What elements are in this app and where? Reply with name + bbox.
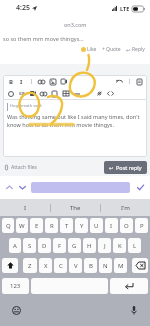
button[interactable]: Return — [110, 278, 148, 294]
button[interactable]: Backspace — [132, 258, 148, 273]
button[interactable]: N — [99, 258, 112, 273]
staticText: 123 — [10, 282, 21, 290]
button[interactable]: O — [120, 218, 133, 233]
button[interactable]: T — [60, 218, 73, 233]
button[interactable]: ↩ — [125, 45, 146, 54]
staticText: ↩ — [109, 165, 114, 171]
button[interactable]: G — [68, 238, 81, 253]
button[interactable]: Source code — [105, 88, 116, 99]
button[interactable]: Like — [80, 45, 98, 54]
button[interactable]: Next field — [16, 181, 29, 194]
staticText: X — [44, 262, 48, 270]
staticText: B — [9, 78, 13, 86]
button[interactable]: I'm — [101, 199, 150, 216]
staticText: Hogsbreath said: — [10, 103, 42, 108]
button[interactable]: Q — [2, 218, 14, 233]
staticText: so so them mm move thingys... — [3, 35, 84, 42]
staticText: I — [110, 222, 113, 230]
button[interactable]: Attach file — [49, 88, 60, 99]
staticText: ↩ — [126, 47, 131, 53]
button[interactable]: The — [51, 199, 100, 216]
button[interactable]: Preview — [134, 76, 145, 87]
staticText: LTE — [120, 5, 130, 12]
staticText: I'm — [121, 204, 130, 212]
staticText: E — [35, 222, 39, 230]
staticText: H — [87, 242, 92, 250]
button[interactable]: Insert GIF — [16, 88, 27, 99]
staticText: Quote — [106, 46, 121, 53]
button[interactable]: J — [98, 238, 111, 253]
staticText: I — [24, 204, 27, 212]
staticText: G — [72, 242, 77, 250]
staticText: Z — [28, 262, 32, 270]
button[interactable]: Dictation — [127, 303, 141, 317]
staticText: Attach files — [11, 164, 37, 171]
button[interactable]: Shift — [2, 258, 18, 273]
staticText: L — [133, 242, 137, 250]
staticText: Q — [6, 222, 11, 230]
staticText: P — [140, 222, 144, 230]
button[interactable]: Undo — [114, 76, 125, 87]
button[interactable]: + — [101, 45, 122, 54]
staticText: K — [118, 242, 122, 250]
button[interactable]: Done — [135, 182, 146, 193]
button[interactable]: Insert link 2 — [38, 88, 49, 99]
staticText: S — [28, 242, 32, 250]
button[interactable]: Italic — [16, 76, 27, 87]
button[interactable]: M — [114, 258, 127, 273]
button[interactable]: Y — [75, 218, 88, 233]
button[interactable]: 123 — [2, 278, 29, 294]
staticText: GIF — [19, 91, 25, 96]
button[interactable]: A — [9, 238, 21, 253]
staticText: F — [58, 242, 62, 250]
button[interactable]: V — [69, 258, 82, 273]
button[interactable]: L — [128, 238, 141, 253]
button[interactable]: ↩ — [104, 161, 147, 174]
staticText: + — [102, 46, 105, 53]
staticText: Like — [87, 46, 97, 53]
button[interactable]: Insert media — [58, 76, 69, 87]
staticText: A — [13, 242, 17, 250]
button[interactable]: E — [30, 218, 43, 233]
staticText: N — [103, 262, 108, 270]
staticText: J — [104, 242, 106, 250]
button[interactable]: on3.com — [0, 16, 150, 32]
button[interactable]: I — [105, 218, 118, 233]
button[interactable]: Bold — [5, 76, 16, 87]
staticText: Post reply — [116, 164, 142, 171]
button[interactable]: Insert link — [36, 76, 47, 87]
button[interactable]: C — [54, 258, 67, 273]
button[interactable]: K — [113, 238, 126, 253]
button[interactable]: B — [84, 258, 97, 273]
staticText: Was thinking same but like I said many t… — [7, 113, 144, 129]
staticText: W — [19, 222, 25, 230]
button[interactable]: P — [135, 218, 148, 233]
button[interactable]: Z — [23, 258, 37, 273]
button[interactable]: F — [53, 238, 66, 253]
button[interactable]: R — [45, 218, 58, 233]
button[interactable]: Insert table — [60, 88, 71, 99]
button[interactable]: X — [39, 258, 52, 273]
button[interactable]: I — [0, 199, 50, 216]
button[interactable]: D — [38, 238, 51, 253]
button[interactable]: Horizontal rule — [71, 88, 82, 99]
button[interactable]: Previous field — [3, 181, 16, 194]
button[interactable]: U — [90, 218, 103, 233]
button[interactable]: Attach files — [4, 163, 37, 172]
staticText: Y — [80, 222, 84, 230]
staticText: T — [65, 222, 69, 230]
button[interactable]: Space — [31, 278, 108, 294]
button[interactable]: Spoiler — [94, 88, 105, 99]
button[interactable]: S — [23, 238, 36, 253]
staticText: C — [59, 262, 63, 270]
staticText: R — [50, 222, 54, 230]
button[interactable]: Insert image — [47, 76, 58, 87]
button[interactable]: Insert video — [27, 88, 38, 99]
staticText: 4:25 — [16, 3, 30, 13]
button[interactable]: W — [16, 218, 28, 233]
button[interactable]: H — [83, 238, 96, 253]
staticText: The — [70, 204, 81, 212]
button[interactable]: Emoji keyboard — [9, 303, 23, 317]
button[interactable]: Emoji — [5, 88, 16, 99]
